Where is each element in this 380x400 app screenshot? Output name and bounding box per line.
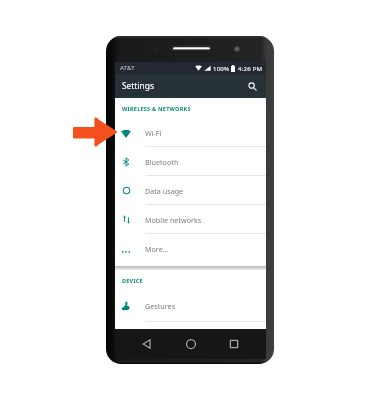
staticText: AT&T	[120, 64, 135, 72]
staticText: More...	[145, 244, 169, 254]
staticText: Wi-Fi	[145, 128, 162, 138]
staticText: WIRELESS & NETWORKS	[122, 105, 191, 112]
button[interactable]: Wi-Fi	[115, 118, 266, 147]
button[interactable]: Back	[136, 333, 158, 355]
button[interactable]: Gestures	[115, 290, 266, 322]
button[interactable]: Search	[245, 79, 259, 93]
button[interactable]: Bluetooth	[115, 147, 266, 176]
button[interactable]: Data usage	[115, 176, 266, 205]
staticText: Bluetooth	[145, 157, 179, 167]
staticText: 4:26 PM	[238, 64, 263, 72]
staticText: Data usage	[145, 186, 184, 196]
button[interactable]: More...	[115, 234, 266, 263]
staticText: Gestures	[145, 301, 176, 311]
button[interactable]: Recents	[223, 333, 245, 355]
button[interactable]: Mobile networks	[115, 205, 266, 234]
staticText: Mobile networks	[145, 215, 202, 225]
staticText: DEVICE	[122, 277, 143, 284]
button[interactable]: Home	[180, 333, 202, 355]
staticText: 100%	[213, 64, 230, 72]
staticText: Settings	[122, 80, 154, 91]
